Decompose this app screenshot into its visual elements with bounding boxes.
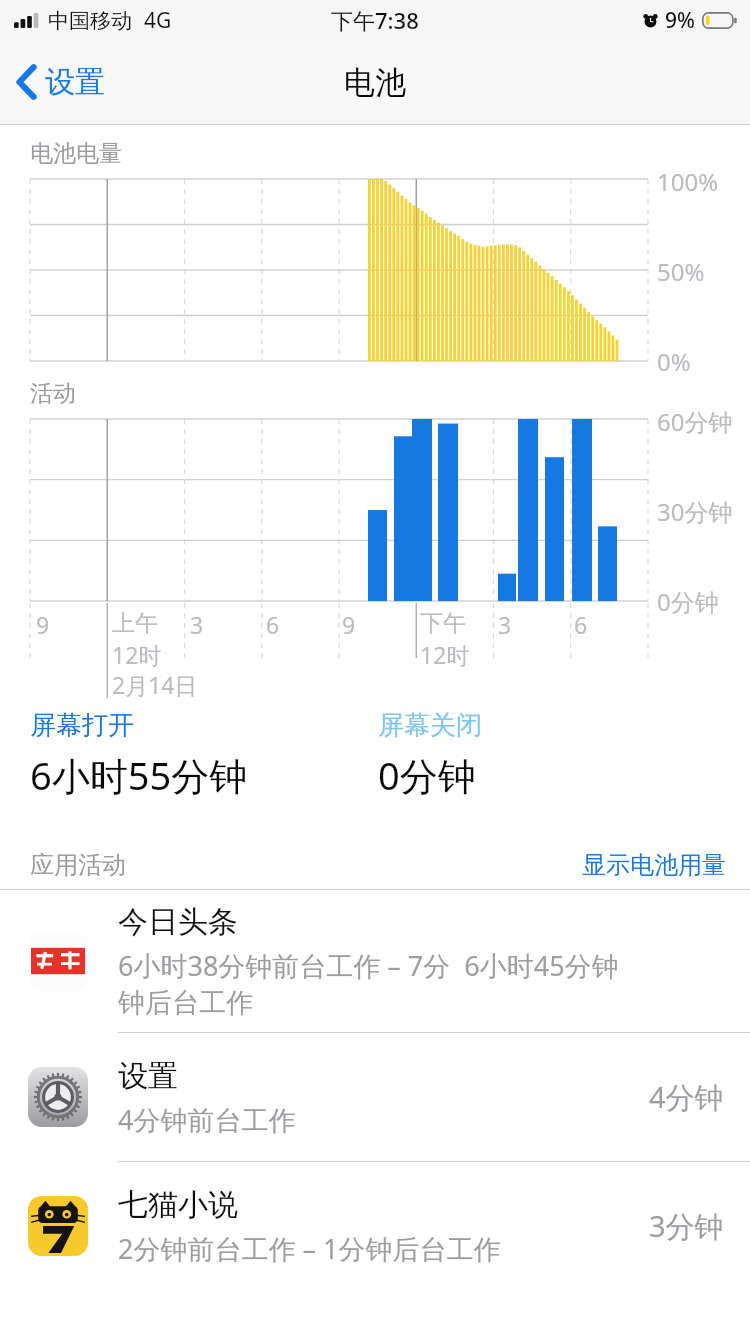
staticText: 下午7:38 [331, 5, 419, 35]
staticText: 12时 [420, 639, 470, 670]
staticText: 电池电量 [30, 139, 122, 168]
staticText: 9% [665, 6, 695, 35]
staticText: 钟后台工作 [118, 986, 253, 1020]
staticText: 屏幕关闭 [378, 709, 482, 742]
staticText: 0分钟 [657, 585, 719, 618]
button[interactable]: 显示电池用量 [558, 842, 750, 888]
staticText: 2分钟前台工作 – 1分钟后台工作 [118, 1230, 501, 1267]
staticText: 50% [657, 255, 705, 288]
staticText: 3 [190, 609, 204, 640]
staticText: 活动 [30, 379, 76, 408]
staticText: 100% [657, 165, 719, 198]
button[interactable]: 设置 [0, 1033, 750, 1161]
staticText: 9 [36, 609, 50, 640]
staticText: 2月14日 [112, 669, 198, 700]
staticText: 6 [574, 609, 588, 640]
staticText: 显示电池用量 [582, 850, 726, 880]
staticText: 6小时55分钟 [30, 749, 248, 801]
staticText: 0% [657, 345, 691, 378]
staticText: 七猫小说 [118, 1186, 238, 1224]
button[interactable]: 设置 [8, 55, 115, 109]
staticText: 下午 [420, 609, 466, 638]
staticText: 9 [342, 609, 356, 640]
staticText: 电池 [344, 63, 406, 102]
staticText: 6小时38分钟前台工作 – 7分 6小时45分钟 [118, 947, 619, 984]
staticText: 设置 [45, 63, 105, 101]
staticText: 60分钟 [657, 405, 733, 438]
staticText: 3 [498, 609, 512, 640]
staticText: 12时 [112, 639, 162, 670]
staticText: 4分钟前台工作 [118, 1101, 296, 1138]
staticText: 今日头条 [118, 903, 238, 941]
staticText: 应用活动 [30, 850, 126, 880]
button[interactable]: 七猫小说 [0, 1162, 750, 1290]
staticText: 30分钟 [657, 495, 733, 528]
staticText: 屏幕打开 [30, 709, 134, 742]
staticText: 6 [266, 609, 280, 640]
button[interactable]: 今日头条 [0, 890, 750, 1032]
staticText: 中国移动 [48, 8, 132, 34]
staticText: 上午 [112, 609, 158, 638]
staticText: 0分钟 [378, 749, 476, 801]
staticText: 4G [144, 6, 172, 35]
staticText: 3分钟 [649, 1206, 724, 1246]
staticText: 4分钟 [649, 1077, 724, 1117]
staticText: 设置 [118, 1057, 178, 1095]
